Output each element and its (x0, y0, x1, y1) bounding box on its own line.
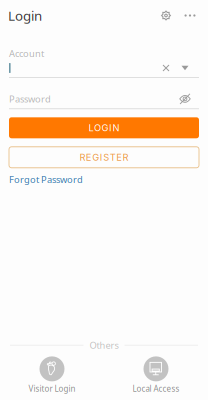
button[interactable]: Settings (156, 5, 176, 25)
button[interactable]: Forgot Password (9, 173, 83, 186)
staticText: Password (9, 93, 51, 105)
staticText: Local Access (132, 383, 179, 394)
staticText: LOGIN (88, 122, 120, 133)
staticText: REGISTER (79, 152, 129, 163)
button[interactable]: Clear (159, 61, 173, 75)
button[interactable]: Show password (177, 92, 193, 105)
button[interactable]: Local Access (104, 356, 208, 394)
staticText: Forgot Password (9, 173, 83, 186)
button[interactable]: Show accounts (178, 61, 192, 75)
staticText: Visitor Login (28, 383, 75, 394)
staticText: Others (89, 339, 118, 351)
button[interactable]: Visitor Login (0, 356, 104, 394)
button[interactable]: More (180, 5, 200, 25)
button[interactable]: LOGIN (9, 117, 199, 138)
staticText: Account (9, 47, 44, 60)
staticText: Login (8, 7, 42, 24)
button[interactable]: REGISTER (9, 147, 199, 168)
